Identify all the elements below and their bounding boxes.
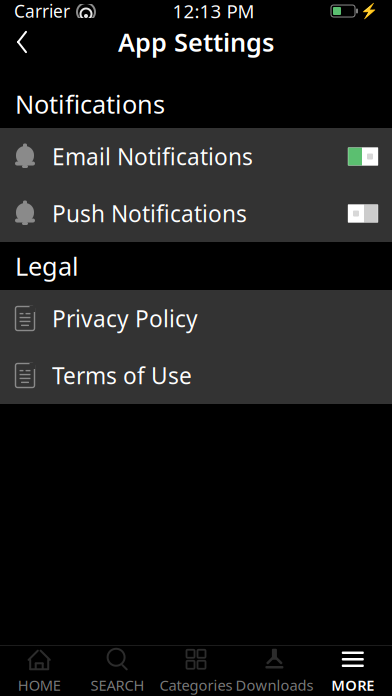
button[interactable]: MORE <box>314 646 392 696</box>
staticText: MORE <box>331 675 374 695</box>
button[interactable]: Terms of Use <box>0 347 392 404</box>
staticText: Terms of Use <box>52 360 192 390</box>
staticText: Notifications <box>15 87 165 121</box>
button[interactable]: HOME <box>0 646 78 696</box>
staticText: ⚡ <box>360 3 378 19</box>
staticText: 12:13 PM <box>172 0 254 23</box>
staticText: Carrier <box>14 0 70 22</box>
staticText: SEARCH <box>91 675 145 695</box>
staticText: Email Notifications <box>52 141 253 171</box>
button[interactable]: Back <box>0 20 44 64</box>
button[interactable]: Push Notifications <box>0 185 392 242</box>
staticText: Categories <box>159 675 232 695</box>
staticText: Privacy Policy <box>52 303 198 333</box>
staticText: Push Notifications <box>52 198 247 228</box>
staticText: HOME <box>18 675 61 695</box>
staticText: Legal <box>15 249 79 283</box>
button[interactable]: Privacy Policy <box>0 290 392 347</box>
staticText: App Settings <box>118 25 274 59</box>
button[interactable]: Email Notifications <box>0 128 392 185</box>
staticText: Downloads <box>235 675 313 695</box>
button[interactable]: Downloads <box>235 646 314 696</box>
button[interactable]: SEARCH <box>78 646 157 696</box>
button[interactable]: Categories <box>157 646 235 696</box>
